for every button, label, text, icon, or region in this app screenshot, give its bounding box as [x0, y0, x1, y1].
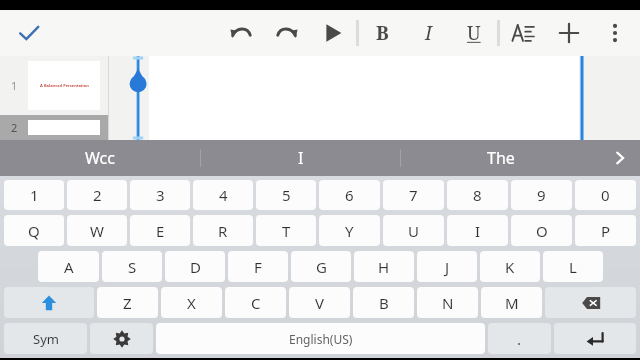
button[interactable]: 1 [0, 56, 108, 115]
staticText: 0 [601, 185, 610, 205]
button[interactable]: P [575, 215, 636, 246]
button[interactable]: English(US) [156, 323, 485, 354]
button[interactable]: 7 [383, 180, 444, 210]
staticText: S [128, 257, 137, 277]
staticText: U [408, 221, 419, 241]
staticText: U [467, 20, 481, 46]
button[interactable]: Q [4, 215, 64, 246]
staticText: X [187, 293, 196, 313]
staticText: J [445, 257, 450, 277]
button[interactable]: I [447, 215, 508, 246]
staticText: Q [28, 221, 40, 241]
staticText: The [487, 147, 515, 169]
staticText: V [315, 293, 325, 313]
staticText: Sym [33, 330, 59, 348]
button[interactable]: O [511, 215, 572, 246]
staticText: Z [123, 293, 132, 313]
button[interactable]: J [417, 251, 477, 282]
staticText: R [218, 221, 228, 241]
button[interactable]: Wcc [0, 140, 200, 176]
staticText: N [442, 293, 454, 313]
button[interactable]: K [480, 251, 540, 282]
button[interactable]: 3 [130, 180, 190, 210]
staticText: 3 [156, 185, 165, 205]
button[interactable]: Y [319, 215, 380, 246]
button[interactable]: C [225, 287, 286, 318]
button[interactable]: W [67, 215, 127, 246]
button[interactable]: U [383, 215, 444, 246]
button[interactable]: G [291, 251, 351, 282]
staticText: Wcc [85, 147, 115, 169]
button[interactable]: 4 [193, 180, 253, 210]
staticText: E [156, 221, 165, 241]
button[interactable]: L [543, 251, 603, 282]
button[interactable]: . [488, 323, 551, 354]
button[interactable]: B [353, 287, 414, 318]
button[interactable]: I [201, 140, 400, 176]
button[interactable]: X [161, 287, 222, 318]
staticText: P [601, 221, 611, 241]
button[interactable]: Undo [218, 10, 264, 56]
button[interactable]: Enter [554, 323, 636, 354]
staticText: I [475, 221, 481, 241]
button[interactable]: Insert [546, 10, 592, 56]
button[interactable]: E [130, 215, 190, 246]
staticText: I [425, 20, 432, 46]
button[interactable]: 2 [67, 180, 127, 210]
button[interactable]: 5 [256, 180, 316, 210]
button[interactable]: S [102, 251, 162, 282]
button[interactable]: 1 [4, 180, 64, 210]
button[interactable]: N [417, 287, 478, 318]
button[interactable]: 2 [0, 115, 108, 140]
button[interactable]: Text format [500, 10, 546, 56]
staticText: F [254, 257, 262, 277]
button[interactable]: The [401, 140, 600, 176]
staticText: English(US) [289, 331, 353, 347]
button[interactable]: More suggestions [600, 140, 640, 176]
staticText: M [505, 293, 519, 313]
staticText: O [536, 221, 548, 241]
button[interactable]: F [228, 251, 288, 282]
staticText: T [282, 221, 291, 241]
button[interactable]: 0 [575, 180, 636, 210]
staticText: 8 [473, 185, 482, 205]
button[interactable]: Italic [405, 10, 451, 56]
staticText: 5 [282, 185, 291, 205]
button[interactable]: Done [10, 14, 48, 52]
button[interactable]: Redo [264, 10, 310, 56]
staticText: H [378, 257, 390, 277]
button[interactable]: Play [310, 10, 356, 56]
staticText: Y [345, 221, 354, 241]
staticText: B [379, 293, 389, 313]
button[interactable]: 6 [319, 180, 380, 210]
staticText: K [505, 257, 515, 277]
staticText: L [569, 257, 577, 277]
button[interactable]: Shift [4, 287, 94, 318]
button[interactable]: D [165, 251, 225, 282]
staticText: 4 [219, 185, 228, 205]
button[interactable]: Keyboard settings [90, 323, 153, 354]
staticText: 1 [30, 185, 39, 205]
staticText: 7 [409, 185, 418, 205]
button[interactable]: Bold [359, 10, 405, 56]
staticText: . [517, 329, 522, 349]
button[interactable]: 8 [447, 180, 508, 210]
button[interactable]: H [354, 251, 414, 282]
button[interactable]: T [256, 215, 316, 246]
staticText: 9 [537, 185, 546, 205]
button[interactable]: V [289, 287, 350, 318]
staticText: A Balanced Presentation [40, 83, 89, 88]
button[interactable]: More options [592, 10, 638, 56]
button[interactable]: Sym [4, 323, 87, 354]
button[interactable]: 9 [511, 180, 572, 210]
staticText: 6 [345, 185, 354, 205]
button[interactable]: R [193, 215, 253, 246]
button[interactable]: Z [97, 287, 158, 318]
button[interactable]: M [481, 287, 542, 318]
staticText: A [64, 257, 74, 277]
button[interactable]: Underline [451, 10, 497, 56]
staticText: 2 [11, 120, 18, 135]
button[interactable]: Backspace [545, 287, 636, 318]
button[interactable]: A [38, 251, 99, 282]
